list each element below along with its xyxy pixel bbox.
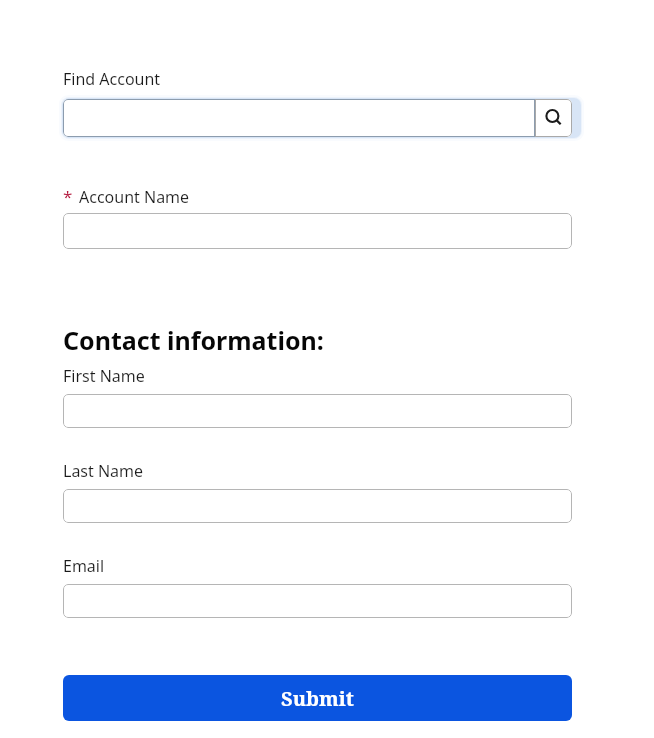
button[interactable] [63, 394, 572, 428]
staticText: First Name [63, 365, 145, 387]
button[interactable] [63, 584, 572, 618]
staticText: Account Name [79, 186, 190, 208]
staticText: Last Name [63, 460, 144, 482]
staticText: * [63, 185, 73, 208]
staticText: Submit [281, 685, 354, 712]
button[interactable]: Search [535, 99, 572, 137]
staticText: Find Account [63, 68, 161, 90]
staticText: Email [63, 555, 105, 577]
button[interactable] [63, 99, 535, 137]
button[interactable] [63, 213, 572, 249]
staticText: Contact information: [63, 323, 324, 357]
button[interactable] [63, 489, 572, 523]
button[interactable]: Submit [63, 675, 572, 721]
